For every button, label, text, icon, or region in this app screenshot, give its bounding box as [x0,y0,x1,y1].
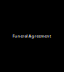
staticText: Funeral Agreement [12,33,51,39]
